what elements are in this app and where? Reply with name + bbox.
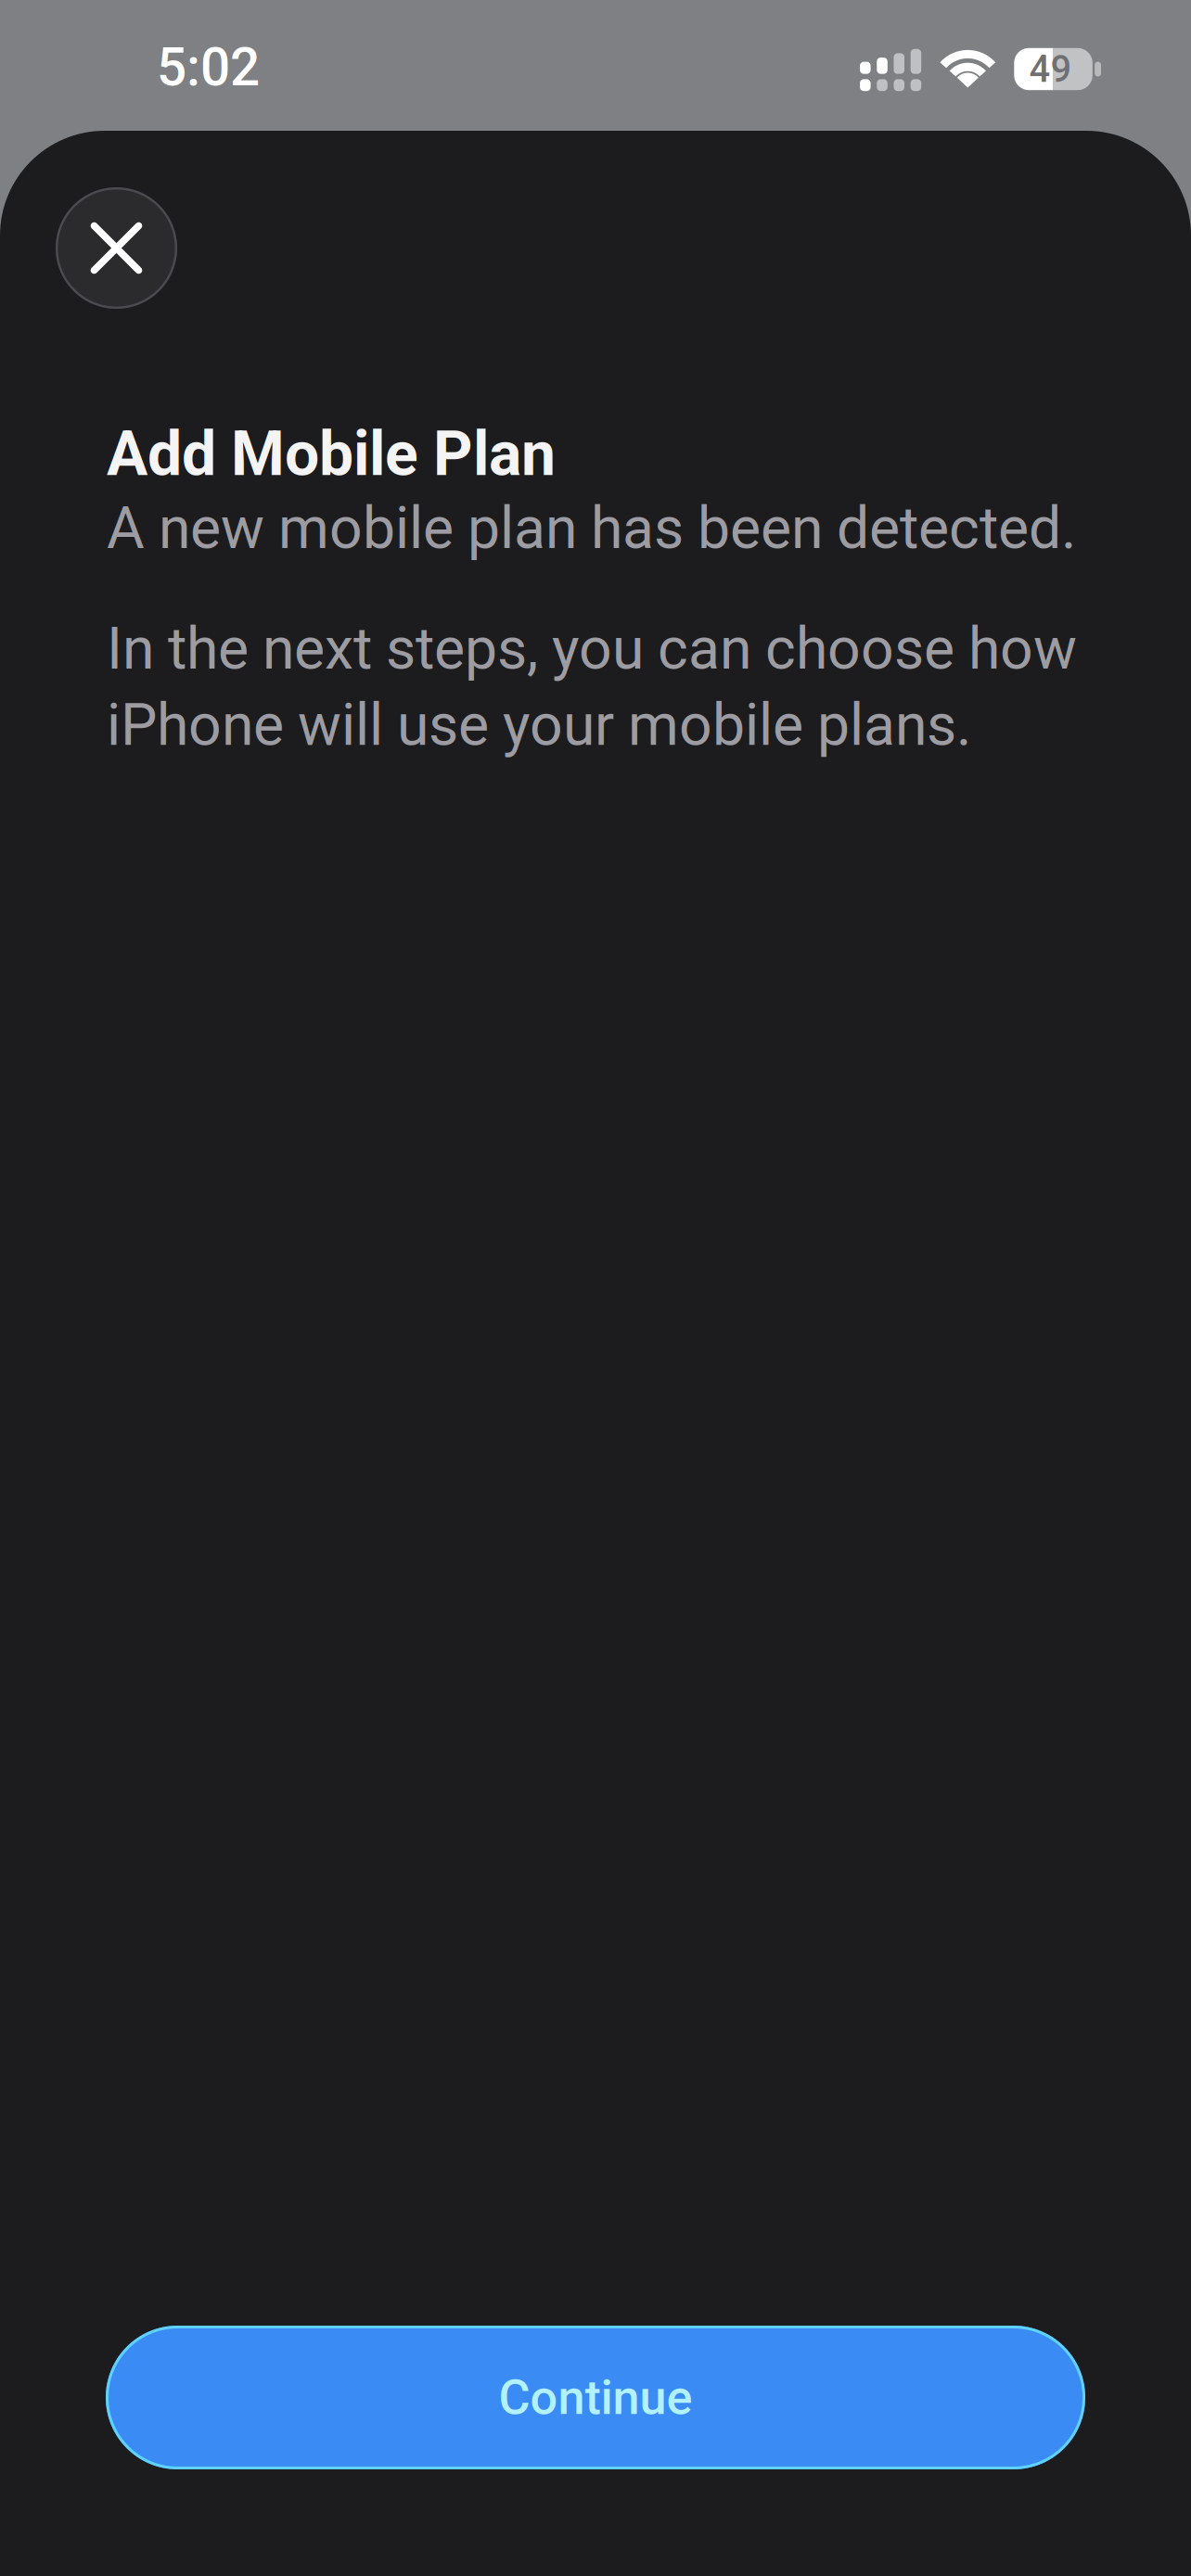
staticText: Continue (499, 2369, 692, 2426)
staticText: In the next steps, you can choose how iP… (107, 615, 1077, 759)
staticText: 5:02 (157, 36, 260, 98)
button[interactable]: Close (56, 187, 177, 309)
staticText: 49 (1029, 47, 1072, 91)
button[interactable]: Continue (106, 2326, 1085, 2469)
staticText: Add Mobile Plan (107, 418, 556, 490)
staticText: A new mobile plan has been detected. (107, 494, 1076, 562)
